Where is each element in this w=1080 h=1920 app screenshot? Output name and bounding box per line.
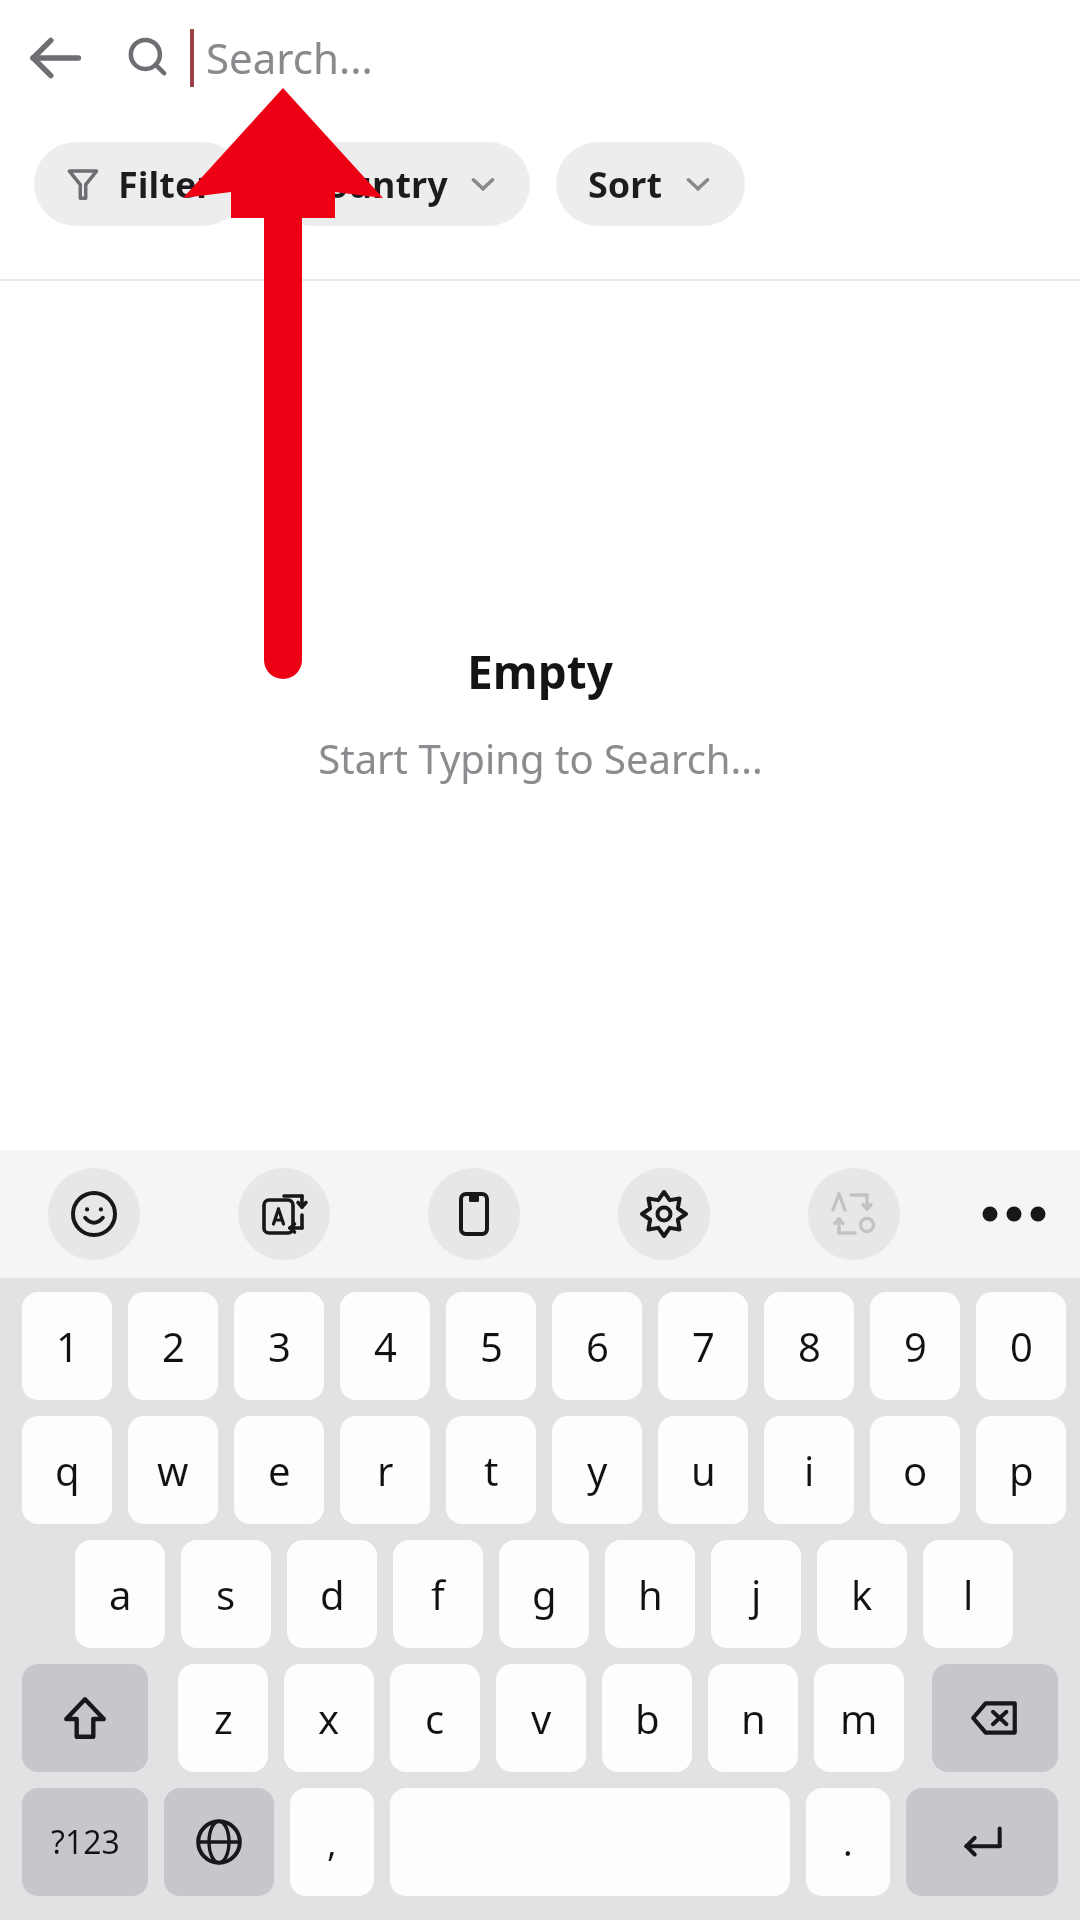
button[interactable]: Clipboard (410, 1150, 538, 1278)
button[interactable]: 5 (446, 1292, 536, 1400)
staticText: c (425, 1691, 445, 1745)
staticText: , (327, 1818, 337, 1867)
button[interactable]: Search... (186, 0, 1080, 115)
staticText: x (318, 1691, 340, 1745)
button[interactable]: Backspace (932, 1664, 1058, 1772)
button[interactable]: 2 (128, 1292, 218, 1400)
staticText: l (963, 1567, 974, 1621)
button[interactable]: v (496, 1664, 586, 1772)
button[interactable]: h (605, 1540, 695, 1648)
staticText: h (638, 1567, 663, 1621)
button[interactable]: c (390, 1664, 480, 1772)
staticText: 7 (692, 1319, 715, 1373)
button[interactable]: j (711, 1540, 801, 1648)
staticText: Start Typing to Search... (318, 731, 763, 785)
staticText: 6 (586, 1319, 609, 1373)
button[interactable]: Enter (906, 1788, 1058, 1896)
button[interactable]: g (499, 1540, 589, 1648)
staticText: 3 (268, 1319, 291, 1373)
button[interactable]: 4 (340, 1292, 430, 1400)
button[interactable]: w (128, 1416, 218, 1524)
button[interactable]: q (22, 1416, 112, 1524)
staticText: . (843, 1818, 853, 1867)
staticText: Empty (467, 640, 613, 703)
staticText: ?123 (51, 1820, 120, 1864)
button[interactable]: d (287, 1540, 377, 1648)
button[interactable]: Settings (600, 1150, 728, 1278)
button[interactable]: . (806, 1788, 890, 1896)
button[interactable]: Translate (220, 1150, 348, 1278)
staticText: o (903, 1443, 928, 1497)
staticText: Country (303, 160, 448, 209)
button[interactable]: a (75, 1540, 165, 1648)
staticText: g (532, 1567, 557, 1621)
button[interactable]: x (284, 1664, 374, 1772)
button[interactable]: r (340, 1416, 430, 1524)
staticText: u (691, 1443, 716, 1497)
button[interactable]: More options (950, 1150, 1078, 1278)
button[interactable]: Country (271, 142, 530, 226)
button[interactable]: ?123 (22, 1788, 148, 1896)
staticText: f (431, 1567, 445, 1621)
button[interactable]: k (817, 1540, 907, 1648)
button[interactable]: Back (0, 0, 110, 115)
button[interactable]: Filter (34, 142, 245, 226)
staticText: s (216, 1567, 236, 1621)
staticText: Sort (588, 160, 663, 209)
staticText: w (157, 1443, 189, 1497)
button[interactable]: Sort (556, 142, 745, 226)
button[interactable]: 6 (552, 1292, 642, 1400)
button[interactable]: b (602, 1664, 692, 1772)
staticText: Search... (206, 29, 373, 86)
button[interactable]: t (446, 1416, 536, 1524)
staticText: b (635, 1691, 660, 1745)
staticText: d (320, 1567, 345, 1621)
button[interactable]: y (552, 1416, 642, 1524)
staticText: e (268, 1443, 291, 1497)
staticText: 5 (480, 1319, 503, 1373)
staticText: 9 (904, 1319, 927, 1373)
button[interactable]: p (976, 1416, 1066, 1524)
button[interactable]: Emoji (30, 1150, 158, 1278)
staticText: v (531, 1691, 552, 1745)
button[interactable]: s (181, 1540, 271, 1648)
staticText: t (484, 1443, 499, 1497)
staticText: r (377, 1443, 394, 1497)
button[interactable]: 3 (234, 1292, 324, 1400)
staticText: 2 (162, 1319, 185, 1373)
button[interactable]: u (658, 1416, 748, 1524)
button[interactable]: 7 (658, 1292, 748, 1400)
staticText: q (55, 1443, 80, 1497)
staticText: j (751, 1567, 762, 1621)
staticText: i (804, 1443, 815, 1497)
staticText: 8 (798, 1319, 821, 1373)
button[interactable]: 9 (870, 1292, 960, 1400)
staticText: Filter (118, 160, 213, 209)
button[interactable]: f (393, 1540, 483, 1648)
button[interactable]: Change language (164, 1788, 274, 1896)
staticText: z (214, 1691, 233, 1745)
button[interactable]: i (764, 1416, 854, 1524)
button[interactable]: e (234, 1416, 324, 1524)
staticText: n (741, 1691, 766, 1745)
staticText: 1 (56, 1319, 79, 1373)
staticText: p (1009, 1443, 1034, 1497)
button[interactable]: Transliterate (790, 1150, 918, 1278)
staticText: 4 (374, 1319, 397, 1373)
button[interactable]: n (708, 1664, 798, 1772)
button[interactable]: 0 (976, 1292, 1066, 1400)
staticText: a (109, 1567, 132, 1621)
button[interactable]: 1 (22, 1292, 112, 1400)
staticText: y (587, 1443, 608, 1497)
button[interactable]: Shift (22, 1664, 148, 1772)
button[interactable]: 8 (764, 1292, 854, 1400)
button[interactable]: , (290, 1788, 374, 1896)
button[interactable]: m (814, 1664, 904, 1772)
button[interactable]: o (870, 1416, 960, 1524)
button[interactable]: z (178, 1664, 268, 1772)
staticText: 0 (1010, 1319, 1033, 1373)
staticText: k (851, 1567, 873, 1621)
button[interactable]: l (923, 1540, 1013, 1648)
staticText: m (840, 1691, 878, 1745)
